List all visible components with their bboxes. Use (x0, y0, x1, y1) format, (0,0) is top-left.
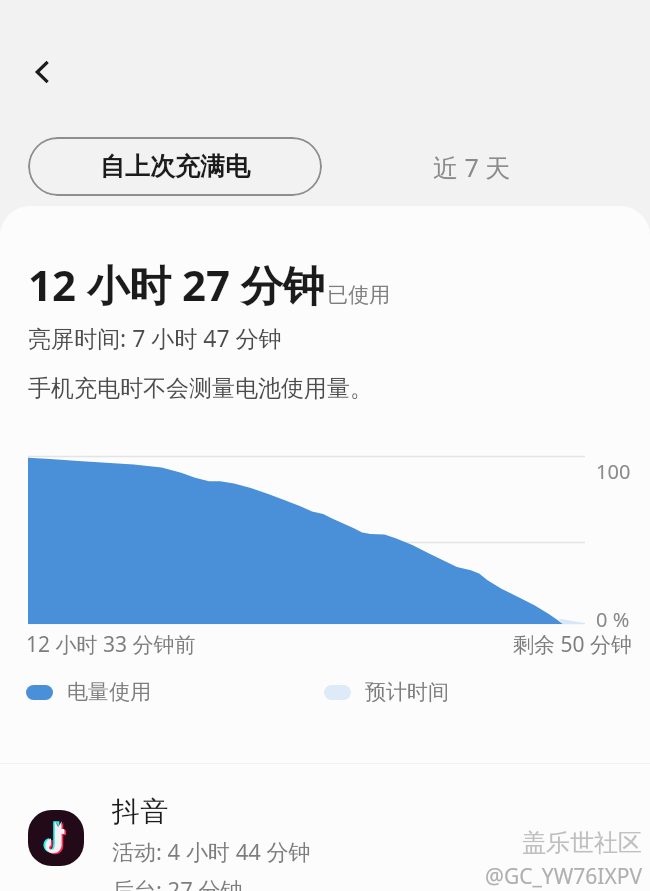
staticText: 12 小时 27 分钟 (28, 256, 325, 313)
staticText: 100 (596, 458, 631, 485)
staticText: 12 小时 33 分钟前 (26, 630, 196, 659)
staticText: 盖乐世社区 (522, 828, 642, 858)
staticText: 预计时间 (365, 679, 449, 705)
staticText: 后台: 27 分钟 (112, 874, 243, 891)
staticText: @GC_YW76IXPV (485, 862, 642, 891)
staticText: 抖音 (112, 794, 168, 829)
staticText: 活动: 4 小时 44 分钟 (112, 836, 311, 866)
staticText: 亮屏时间: 7 小时 47 分钟 (28, 322, 282, 353)
button[interactable]: 抖音 (0, 764, 650, 891)
staticText: 近 7 天 (433, 150, 511, 184)
staticText: 电量使用 (67, 679, 151, 705)
button[interactable]: 自上次充满电 (28, 137, 322, 196)
button[interactable]: 近 7 天 (392, 137, 552, 196)
staticText: 手机充电时不会测量电池使用量。 (28, 374, 373, 403)
staticText: 自上次充满电 (100, 151, 250, 182)
staticText: 已使用 (327, 282, 390, 308)
staticText: 剩余 50 分钟 (513, 630, 632, 659)
staticText: 0 % (596, 606, 630, 633)
button[interactable]: Back (16, 46, 68, 98)
